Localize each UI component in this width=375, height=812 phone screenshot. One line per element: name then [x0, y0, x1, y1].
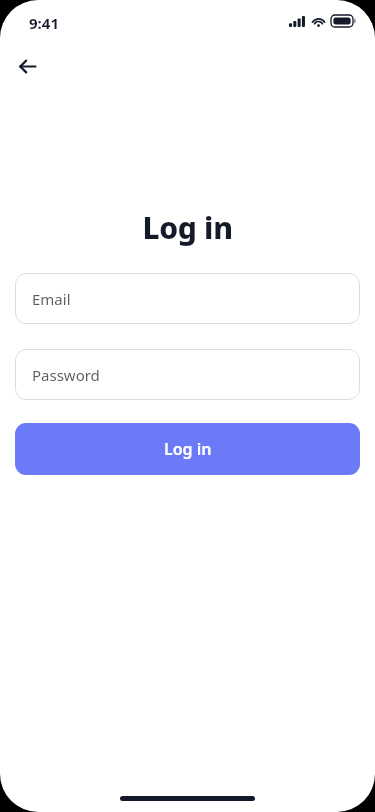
- button[interactable]: Email: [15, 273, 360, 324]
- staticText: Log in: [164, 438, 212, 460]
- staticText: Email: [32, 289, 71, 309]
- button[interactable]: Back: [9, 48, 45, 84]
- staticText: Password: [32, 365, 100, 385]
- button[interactable]: Log in: [15, 423, 360, 475]
- staticText: 9:41: [29, 13, 59, 33]
- button[interactable]: Password: [15, 349, 360, 400]
- staticText: Log in: [15, 207, 360, 248]
